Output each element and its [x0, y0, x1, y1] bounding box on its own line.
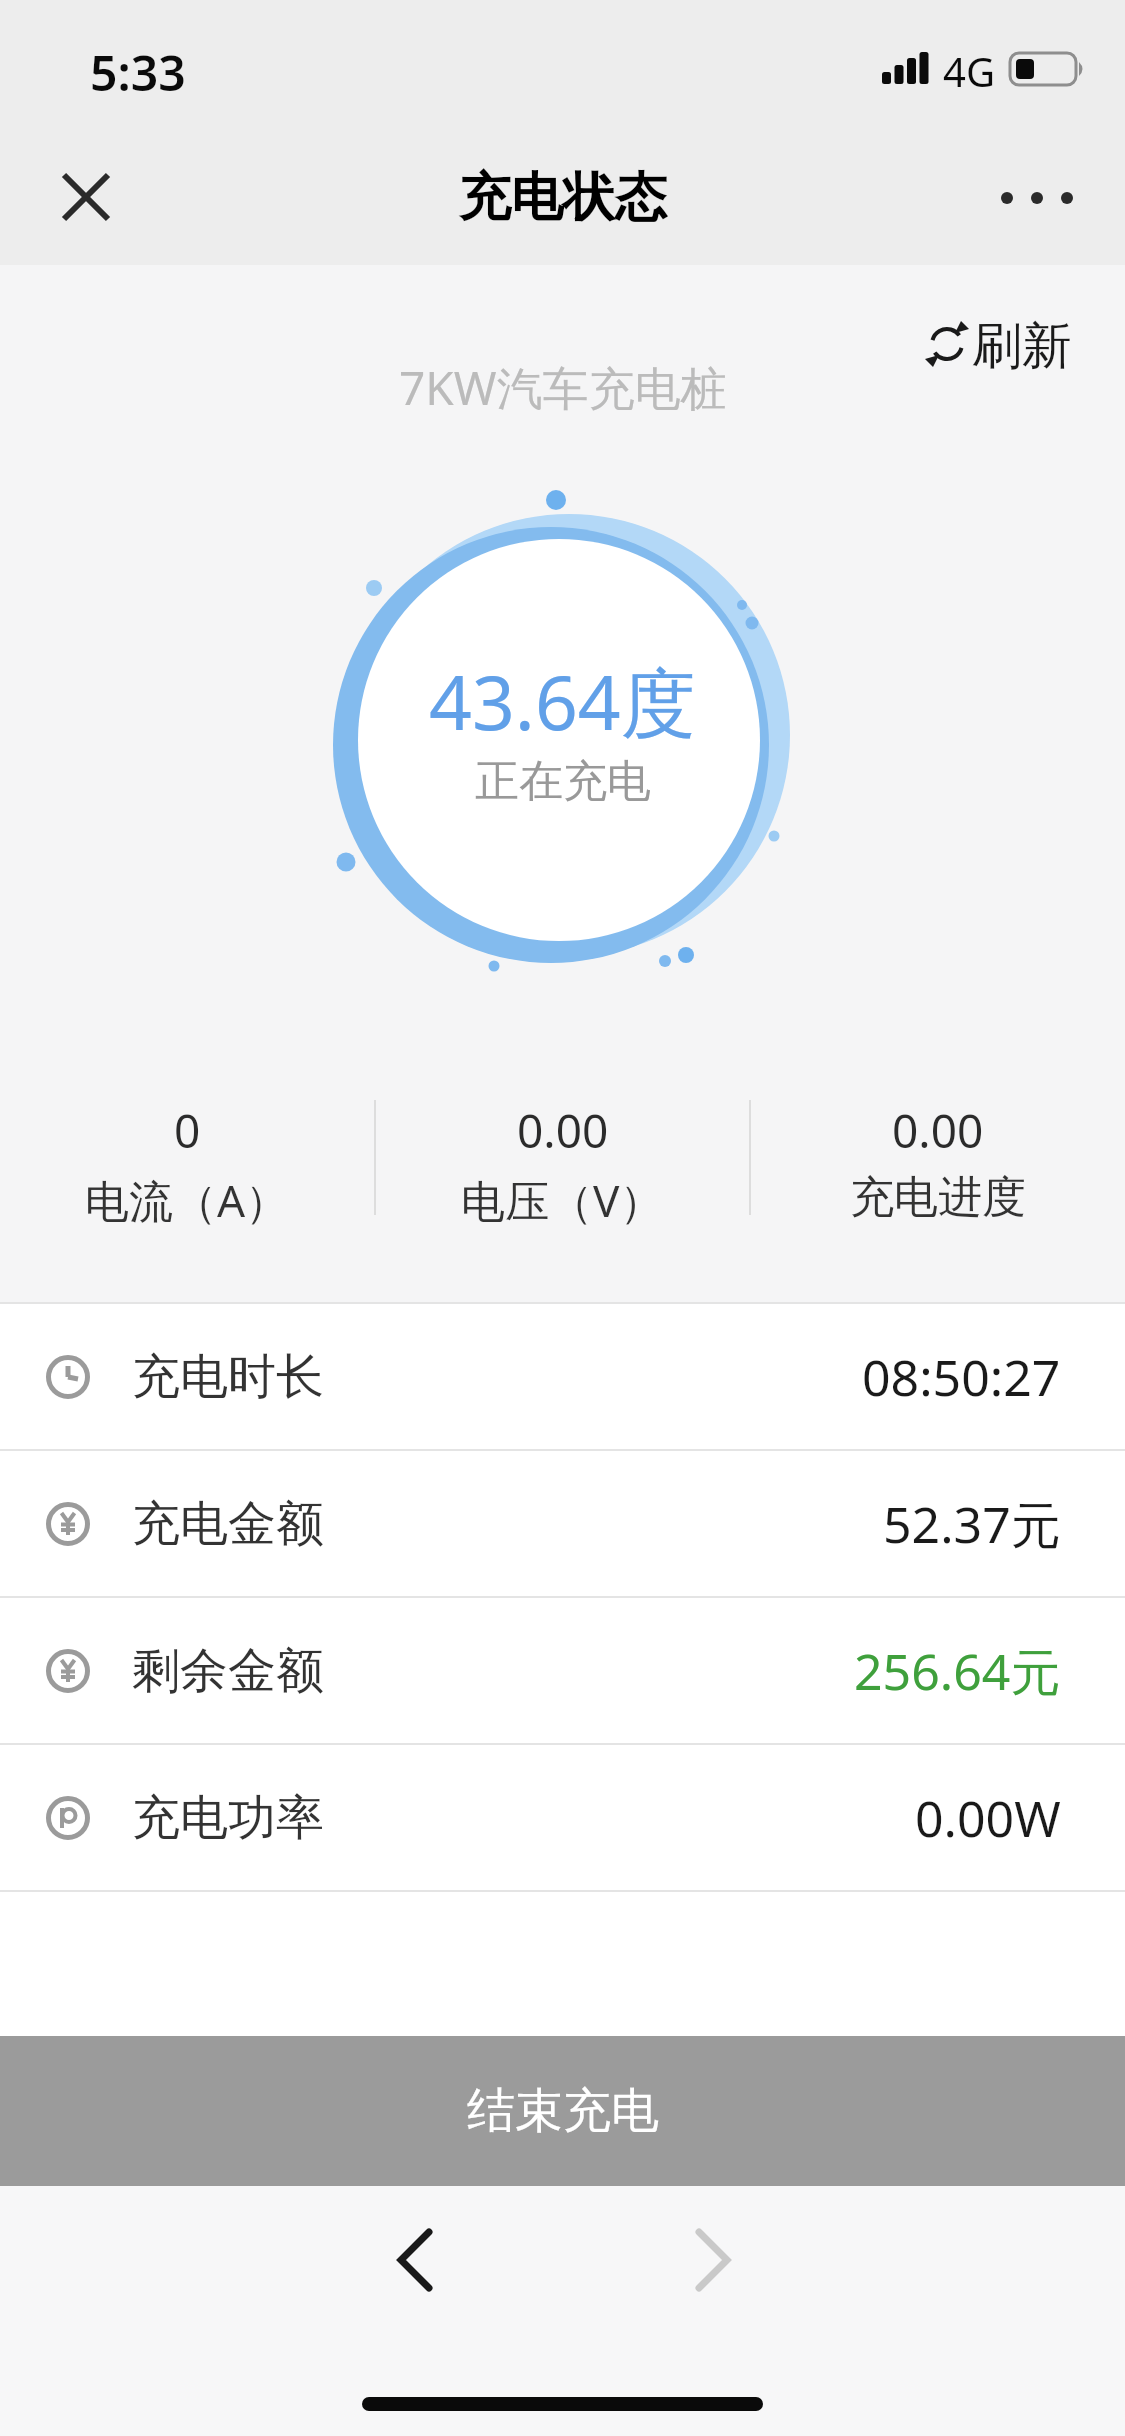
staticText: 刷新	[972, 315, 1072, 373]
button[interactable]: 剩余金额	[0, 1598, 1125, 1743]
staticText: 充电时长	[132, 1347, 324, 1407]
staticText: 0.00	[517, 1099, 609, 1162]
button[interactable]: 结束充电	[0, 2036, 1125, 2186]
staticText: 充电进度	[850, 1170, 1026, 1225]
staticText: 0.00W	[915, 1784, 1061, 1852]
button[interactable]	[380, 2225, 450, 2295]
staticText: 剩余金额	[132, 1641, 324, 1701]
staticText: 0	[174, 1099, 201, 1162]
staticText: 充电功率	[132, 1788, 324, 1848]
staticText: 0.00	[892, 1099, 984, 1162]
button[interactable]: 充电功率	[0, 1745, 1125, 1890]
button[interactable]: 充电时长	[0, 1304, 1125, 1449]
staticText: 4G	[943, 44, 995, 98]
staticText: 电压（V）	[461, 1170, 664, 1229]
button[interactable]	[678, 2225, 748, 2295]
staticText: 08:50:27	[862, 1343, 1061, 1411]
button[interactable]	[995, 172, 1079, 222]
staticText: 7KW汽车充电桩	[399, 356, 727, 419]
staticText: 正在充电	[475, 754, 651, 809]
staticText: 43.64度	[429, 650, 696, 752]
staticText: 52.37元	[883, 1490, 1061, 1558]
staticText: 结束充电	[467, 2081, 659, 2141]
staticText: 电流（A）	[85, 1170, 290, 1229]
staticText: 5:33	[90, 40, 186, 105]
button[interactable]: 刷新	[928, 315, 1072, 373]
staticText: 256.64元	[854, 1637, 1061, 1705]
button[interactable]	[50, 161, 122, 233]
staticText: 充电状态	[459, 165, 667, 231]
staticText: 充电金额	[132, 1494, 324, 1554]
button[interactable]: 充电金额	[0, 1451, 1125, 1596]
